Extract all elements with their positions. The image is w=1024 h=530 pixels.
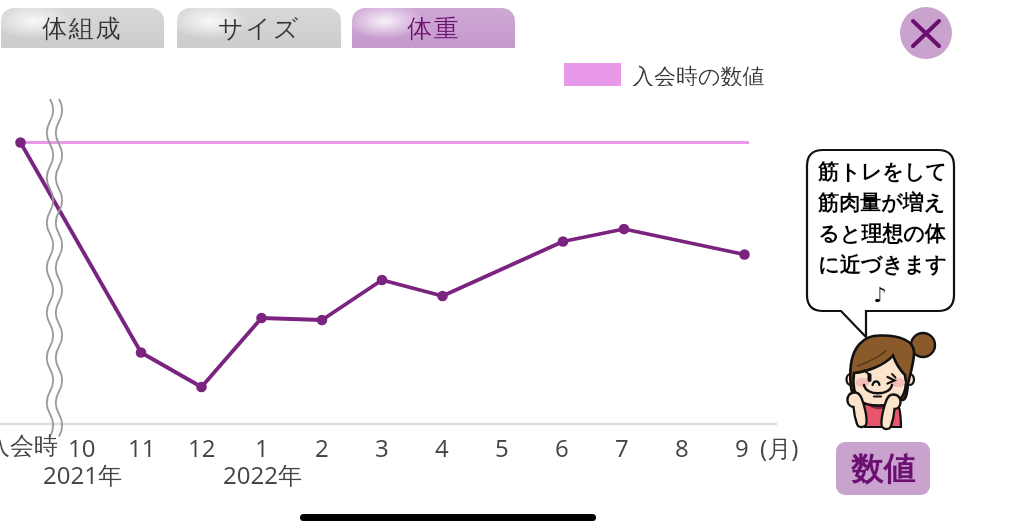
staticText: 入会時 <box>0 431 58 461</box>
staticText: 6 <box>555 431 569 461</box>
staticText: 8 <box>675 431 689 461</box>
staticText: 1 <box>255 431 269 461</box>
staticText: に近づきます <box>818 252 947 283</box>
staticText: 10 <box>68 431 96 461</box>
staticText: サイズ <box>218 13 301 44</box>
staticText: 入会時の数値 <box>632 63 765 86</box>
staticText: 数値 <box>851 449 915 489</box>
staticText: 5 <box>495 431 509 461</box>
staticText: 7 <box>615 431 629 461</box>
staticText: 12 <box>188 431 216 461</box>
staticText: 3 <box>375 431 389 461</box>
staticText: 9 <box>735 431 749 461</box>
staticText: 2021年 <box>43 458 122 488</box>
staticText: ♪ <box>818 283 942 314</box>
staticText: ると理想の体 <box>818 221 946 252</box>
button[interactable]: 体重 <box>352 8 515 48</box>
button[interactable]: 閉じる <box>900 7 952 59</box>
button[interactable]: 体組成 <box>1 8 164 48</box>
staticText: (月) <box>760 431 799 461</box>
button[interactable]: サイズ <box>177 8 341 48</box>
staticText: 2 <box>315 431 329 461</box>
staticText: 11 <box>128 431 156 461</box>
staticText: 筋肉量が増え <box>818 190 945 221</box>
staticText: 体重 <box>407 13 461 44</box>
staticText: 2022年 <box>223 458 302 488</box>
staticText: 筋トレをして <box>818 159 947 190</box>
staticText: 4 <box>435 431 449 461</box>
staticText: 体組成 <box>42 13 123 44</box>
button[interactable]: 数値 <box>836 442 930 495</box>
